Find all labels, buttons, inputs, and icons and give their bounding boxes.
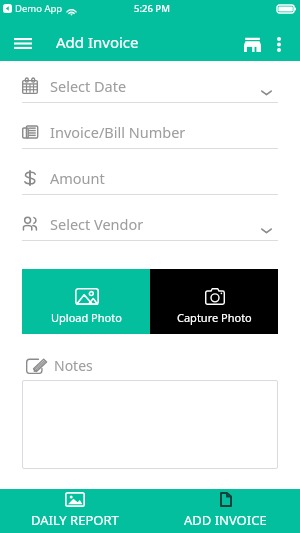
staticText: 5:26 PM: [134, 2, 170, 15]
staticText: Upload Photo: [51, 310, 122, 325]
staticText: Demo App: [15, 2, 63, 15]
staticText: Select Vendor: [50, 214, 144, 234]
staticText: Select Date: [50, 76, 127, 96]
staticText: Amount: [50, 168, 105, 188]
staticText: Capture Photo: [177, 310, 252, 325]
button[interactable]: Invoice/Bill Number: [0, 115, 300, 161]
staticText: DAILY REPORT: [31, 511, 119, 529]
button[interactable]: Capture Photo: [150, 269, 278, 334]
staticText: Add Invoice: [56, 32, 139, 52]
button[interactable]: Amount: [0, 161, 300, 207]
staticText: ADD INVOICE: [184, 511, 267, 529]
staticText: Notes: [54, 356, 93, 375]
button[interactable]: Upload Photo: [22, 269, 150, 334]
button[interactable]: DAILY REPORT: [0, 489, 150, 533]
button[interactable]: Store: [237, 27, 268, 61]
button[interactable]: More options: [268, 27, 290, 61]
button[interactable]: Select Vendor: [0, 207, 300, 253]
button[interactable]: ADD INVOICE: [150, 489, 300, 533]
button[interactable]: [22, 380, 278, 469]
staticText: Invoice/Bill Number: [50, 122, 186, 142]
button[interactable]: Menu: [5, 25, 41, 61]
button[interactable]: Select Date: [0, 69, 300, 115]
